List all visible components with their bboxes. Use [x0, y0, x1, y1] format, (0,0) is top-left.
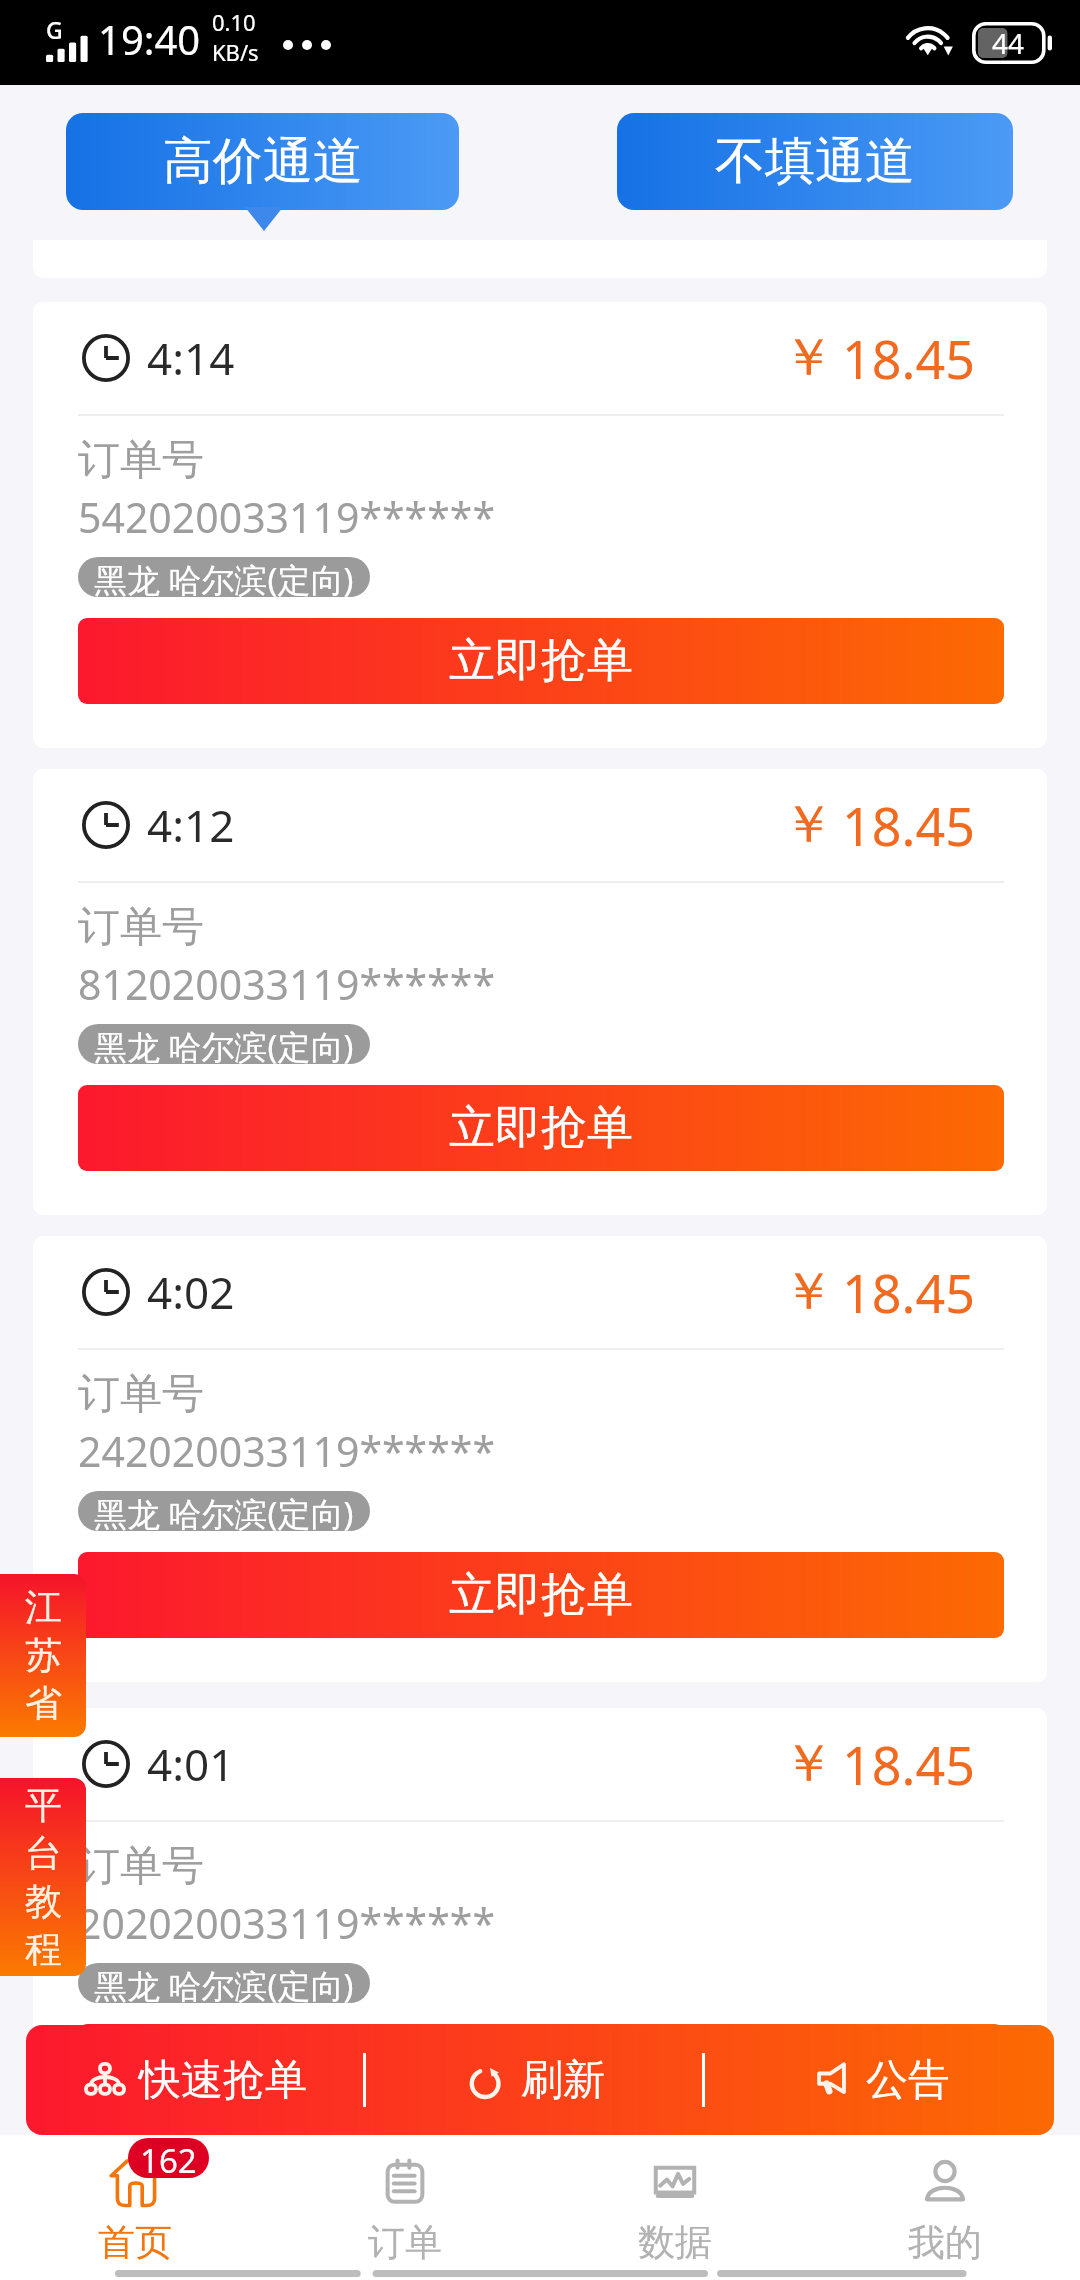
button[interactable]: 公告 [705, 2025, 1054, 2135]
staticText: 订单号 [78, 901, 204, 954]
staticText: 立即抢单 [449, 632, 633, 690]
staticText: 订单号 [78, 1368, 204, 1421]
staticText: 4:14 [147, 328, 235, 388]
staticText: 黑龙 哈尔滨(定向) [94, 1491, 354, 1531]
button[interactable]: 快速抢单 [26, 2025, 363, 2135]
button[interactable]: 不填通道 [617, 113, 1013, 210]
staticText: 数据 [638, 2219, 712, 2266]
button[interactable]: 立即抢单 [78, 2024, 1004, 2110]
staticText: 订单号 [78, 434, 204, 487]
button[interactable]: 江苏省 [0, 1574, 86, 1737]
staticText: 我的 [908, 2219, 982, 2266]
staticText: 18.45 [842, 1729, 975, 1800]
staticText: 4:02 [147, 1262, 235, 1322]
button[interactable]: 数据 [540, 2135, 810, 2280]
staticText: ￥ [782, 792, 834, 858]
button[interactable]: 订单 [270, 2135, 540, 2280]
staticText: 0.10 [212, 7, 256, 37]
staticText: 542020033119****** [78, 489, 495, 545]
staticText: 订单号 [78, 1840, 204, 1893]
staticText: ￥ [782, 1259, 834, 1325]
staticText: ￥ [782, 325, 834, 391]
staticText: 立即抢单 [449, 2038, 633, 2096]
staticText: 4:01 [147, 1734, 235, 1794]
button[interactable]: 4:01 [33, 1708, 1047, 2154]
staticText: 订单 [368, 2219, 442, 2266]
staticText: 立即抢单 [449, 1099, 633, 1157]
staticText: 黑龙 哈尔滨(定向) [94, 557, 354, 597]
staticText: 202020033119****** [78, 1895, 495, 1951]
staticText: 18.45 [842, 323, 975, 394]
button[interactable]: 4:14 [33, 302, 1047, 748]
staticText: 18.45 [842, 790, 975, 861]
staticText: KB/s [212, 37, 259, 67]
staticText: 44 [992, 24, 1025, 62]
staticText: 公告 [866, 2054, 950, 2107]
staticText: 刷新 [521, 2054, 605, 2107]
staticText: 162 [140, 2138, 197, 2178]
staticText: 812020033119****** [78, 956, 495, 1012]
button[interactable]: 我的 [810, 2135, 1080, 2280]
staticText: 黑龙 哈尔滨(定向) [94, 1024, 354, 1064]
staticText: 18.45 [842, 1257, 975, 1328]
staticText: 4:12 [147, 795, 235, 855]
button[interactable]: 立即抢单 [78, 1552, 1004, 1638]
staticText: 19:40 [98, 12, 201, 66]
staticText: ￥ [782, 1731, 834, 1797]
staticText: 不填通道 [715, 130, 915, 193]
staticText: 立即抢单 [449, 1566, 633, 1624]
staticText: G [46, 14, 63, 45]
button[interactable]: 平台教程 [0, 1778, 86, 1976]
button[interactable]: 4:02 [33, 1236, 1047, 1682]
staticText: 高价通道 [163, 130, 363, 193]
button[interactable]: 高价通道 [66, 113, 459, 210]
button[interactable]: 立即抢单 [78, 618, 1004, 704]
staticText: 黑龙 哈尔滨(定向) [94, 1963, 354, 2003]
staticText: 242020033119****** [78, 1423, 495, 1479]
staticText: 江 苏 省 [25, 1584, 62, 1727]
button[interactable]: 立即抢单 [78, 1085, 1004, 1171]
staticText: 平 台 教 程 [25, 1782, 62, 1973]
staticText: 快速抢单 [139, 2054, 307, 2107]
button[interactable]: 首页 [0, 2135, 270, 2280]
staticText: 首页 [98, 2219, 172, 2266]
button[interactable]: 刷新 [366, 2025, 702, 2135]
button[interactable]: 4:12 [33, 769, 1047, 1215]
